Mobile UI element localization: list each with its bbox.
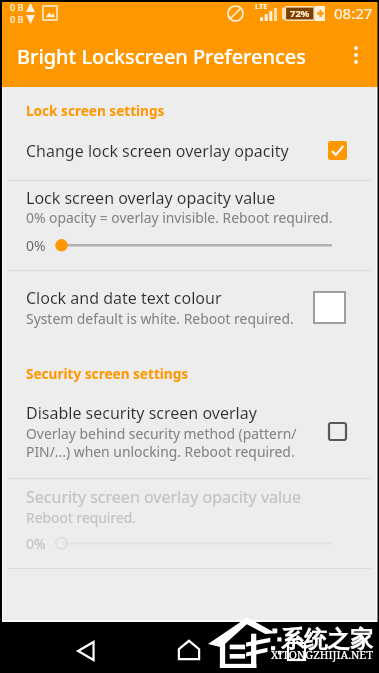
staticText: Reboot required. — [26, 508, 137, 527]
staticText: System default is white. Reboot required… — [26, 309, 294, 328]
staticText: Overlay behind security method (pattern/ — [26, 424, 297, 443]
staticText: Security screen overlay opacity value — [26, 486, 302, 508]
staticText: Disable security screen overlay — [26, 402, 257, 424]
button[interactable]: Recents — [273, 626, 319, 673]
staticText: 0 B — [10, 1, 24, 13]
staticText: 0% opacity = overlay invisible. Reboot r… — [26, 208, 333, 227]
staticText: 0% — [26, 236, 46, 255]
button[interactable]: Disable security screen overlay — [0, 396, 379, 478]
button[interactable]: Home — [166, 624, 212, 673]
staticText: LTE — [255, 1, 268, 11]
staticText: Security screen settings — [26, 364, 189, 383]
staticText: Lock screen settings — [26, 101, 165, 120]
staticText: 72% — [290, 7, 310, 20]
staticText: 系统之家 — [281, 625, 373, 654]
button[interactable]: Lock screen overlay opacity value — [0, 181, 379, 269]
button[interactable]: More options — [337, 36, 375, 74]
button[interactable]: Change lock screen overlay opacity check… — [328, 141, 347, 160]
staticText: 0% — [26, 534, 46, 553]
button[interactable]: Change lock screen overlay opacity — [0, 130, 379, 179]
staticText: Change lock screen overlay opacity — [26, 140, 289, 162]
button[interactable]: Clock and date text colour — [0, 271, 379, 333]
staticText: 08:27 — [334, 3, 373, 23]
staticText: PIN/...) when unlocking. Reboot required… — [26, 442, 295, 461]
staticText: Bright Lockscreen Preferences — [17, 43, 306, 70]
button[interactable]: Disable security screen overlay checkbox… — [328, 422, 347, 441]
staticText: Clock and date text colour — [26, 287, 222, 309]
staticText: Lock screen overlay opacity value — [26, 187, 276, 209]
button[interactable]: Back — [63, 625, 109, 673]
staticText: 0 B — [10, 13, 24, 25]
staticText: XITONGZHIJIA.NET — [271, 647, 373, 662]
